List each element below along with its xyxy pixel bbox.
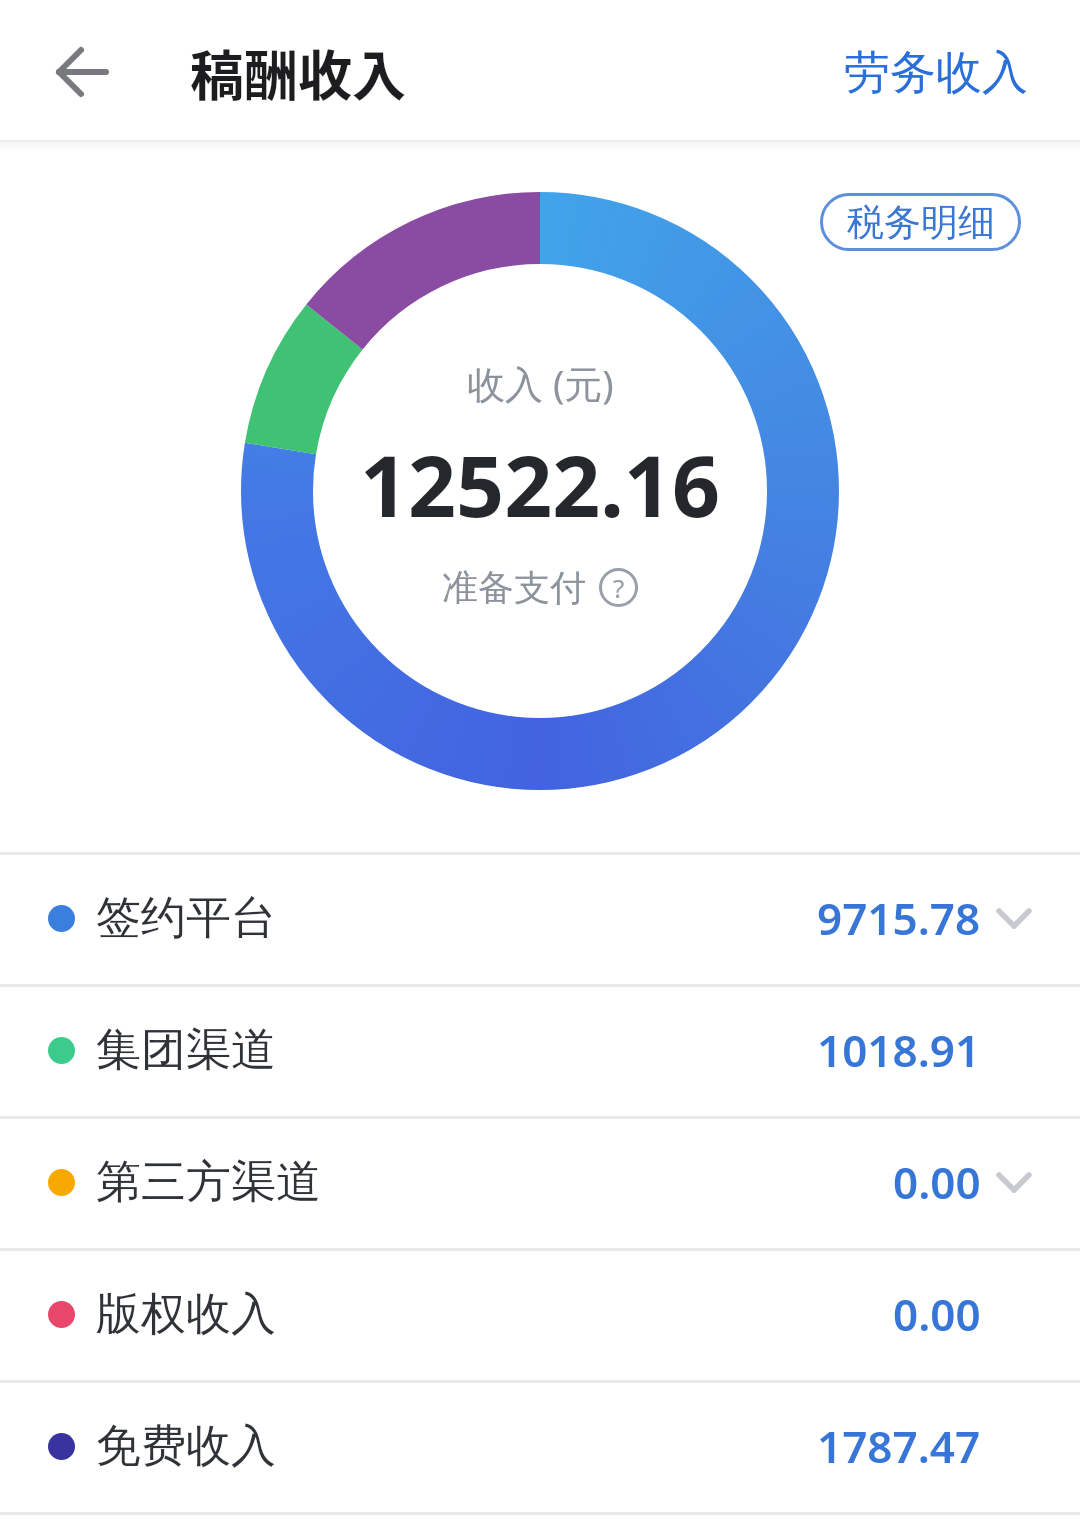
staticText: 稿酬收入 — [190, 33, 406, 111]
staticText: 9715.78 — [817, 888, 981, 948]
staticText: 1787.47 — [817, 1416, 981, 1476]
staticText: 0.00 — [893, 1152, 981, 1212]
button[interactable] — [36, 32, 128, 112]
staticText: 劳务收入 — [844, 44, 1028, 102]
staticText: 1018.91 — [817, 1020, 981, 1080]
staticText: 签约平台 — [96, 890, 276, 947]
staticText: 第三方渠道 — [96, 1154, 321, 1211]
staticText: 集团渠道 — [96, 1022, 276, 1079]
staticText: 0.00 — [893, 1284, 981, 1344]
button[interactable]: 免费收入 — [0, 1380, 1080, 1512]
button[interactable]: 税务明细 — [820, 193, 1021, 251]
staticText: 12522.16 — [360, 427, 720, 541]
staticText: 准备支付 — [442, 565, 586, 610]
button[interactable]: 第三方渠道 — [0, 1116, 1080, 1248]
button[interactable]: 集团渠道 — [0, 984, 1080, 1116]
staticText: 收入 (元) — [467, 357, 614, 409]
button[interactable]: 版权收入 — [0, 1248, 1080, 1380]
staticText: 版权收入 — [96, 1286, 276, 1343]
staticText: ? — [613, 570, 625, 605]
button[interactable]: 劳务收入 — [828, 38, 1043, 108]
button[interactable]: 签约平台 — [0, 852, 1080, 984]
staticText: 税务明细 — [847, 199, 995, 246]
staticText: 免费收入 — [96, 1418, 276, 1475]
